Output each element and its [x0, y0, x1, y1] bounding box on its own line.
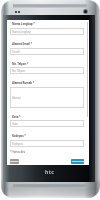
- staticText: Kota *: [12, 115, 21, 119]
- staticText: No. Telpon: [12, 69, 26, 73]
- staticText: Alamat: [12, 96, 21, 100]
- staticText: No. Telpon *: [12, 62, 29, 66]
- staticText: Nama Lengkap: [12, 30, 31, 34]
- staticText: Selanjutnya: [72, 160, 84, 163]
- staticText: Kota: [12, 122, 18, 126]
- staticText: Alamat Rumah *: [12, 81, 35, 85]
- staticText: Kodepos: [12, 142, 23, 146]
- staticText: Alamat Email *: [12, 42, 32, 46]
- button[interactable]: No. Telpon: [10, 67, 84, 74]
- button[interactable]: Selanjutnya: [71, 159, 84, 164]
- staticText: Nama Lengkap *: [12, 22, 35, 26]
- button[interactable]: Alamat: [10, 87, 84, 108]
- staticText: E-mail: [12, 50, 20, 54]
- staticText: Kembali: [10, 160, 19, 163]
- button[interactable]: Kota: [10, 120, 84, 127]
- staticText: *) harus diisi: [10, 150, 26, 154]
- button[interactable]: Kodepos: [10, 140, 84, 147]
- staticText: Kodepos *: [12, 134, 26, 138]
- staticText: htc: [45, 169, 55, 176]
- button[interactable]: Nama Lengkap: [10, 28, 84, 35]
- button[interactable]: E-mail: [10, 48, 84, 55]
- button[interactable]: Kembali: [10, 159, 19, 164]
